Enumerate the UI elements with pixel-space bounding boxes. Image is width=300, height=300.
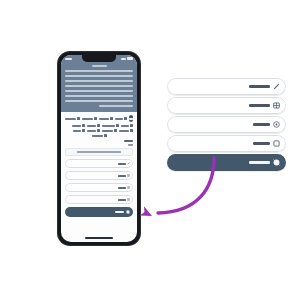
button[interactable]	[72, 124, 85, 127]
button[interactable]	[129, 115, 133, 122]
button[interactable]	[99, 117, 113, 120]
button[interactable]	[65, 183, 133, 192]
button[interactable]	[87, 124, 100, 127]
button[interactable]	[65, 207, 133, 217]
button[interactable]	[102, 124, 119, 127]
button[interactable]: لوگو	[167, 116, 286, 133]
button[interactable]	[65, 159, 133, 168]
button[interactable]	[121, 124, 133, 127]
button[interactable]	[119, 129, 133, 132]
button[interactable]	[65, 171, 133, 180]
button[interactable]	[87, 129, 100, 132]
button[interactable]: رنگ ها	[167, 78, 286, 95]
button[interactable]	[65, 148, 133, 156]
button[interactable]	[65, 117, 80, 120]
button[interactable]	[102, 129, 117, 132]
button[interactable]	[115, 117, 127, 120]
button[interactable]: فریم	[167, 135, 286, 152]
button[interactable]	[82, 117, 97, 120]
button[interactable]: ابزارها	[167, 154, 286, 171]
button[interactable]	[73, 129, 85, 132]
button[interactable]	[65, 195, 133, 204]
button[interactable]: دیزاین	[167, 97, 286, 114]
button[interactable]	[92, 134, 107, 137]
